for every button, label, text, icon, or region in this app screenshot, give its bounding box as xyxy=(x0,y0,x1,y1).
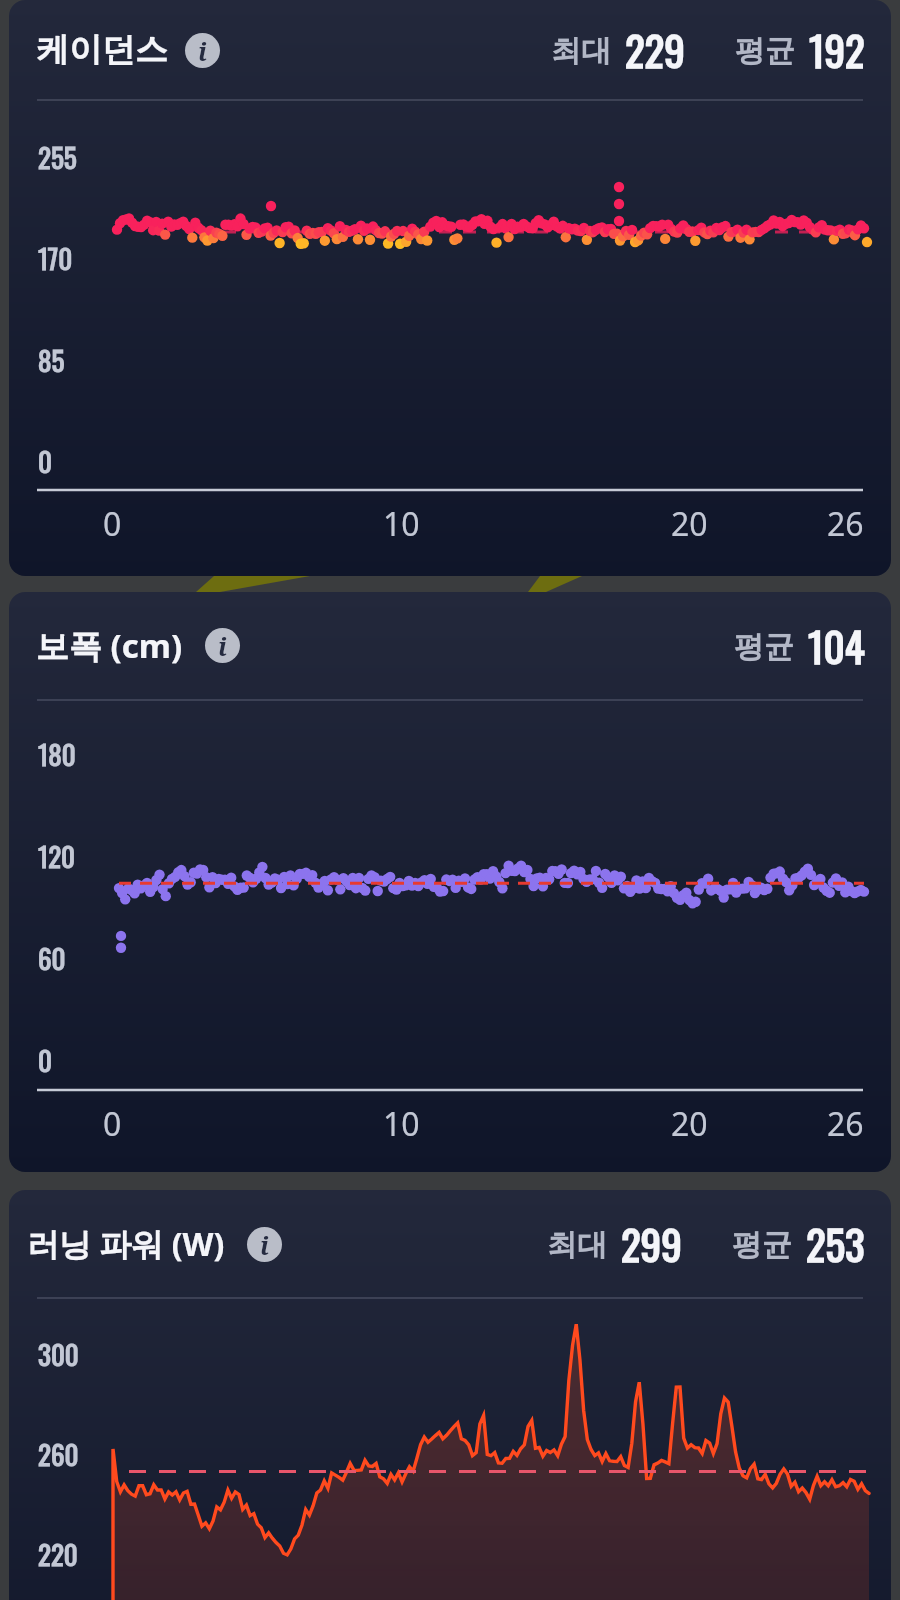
staticText: 104 xyxy=(808,615,865,676)
staticText: 26 xyxy=(827,502,864,546)
staticText: 평균 xyxy=(732,1226,792,1264)
button[interactable]: 정보 xyxy=(205,628,240,663)
staticText: 299 xyxy=(621,1213,682,1274)
staticText: 최대 xyxy=(551,32,611,70)
staticText: 85 xyxy=(38,340,65,380)
button[interactable]: 보폭 (cm) xyxy=(9,592,891,1172)
staticText: 0 xyxy=(103,1102,122,1146)
staticText: 러닝 파워 (W) xyxy=(27,1222,225,1266)
staticText: 180 xyxy=(38,734,76,774)
staticText: 170 xyxy=(38,238,73,278)
staticText: 보폭 (cm) xyxy=(36,623,183,668)
staticText: 255 xyxy=(38,137,77,177)
staticText: 20 xyxy=(671,1102,708,1146)
staticText: 최대 xyxy=(547,1226,607,1264)
staticText: 평균 xyxy=(735,32,795,70)
button[interactable]: 정보 xyxy=(247,1227,282,1262)
staticText: 평균 xyxy=(734,628,794,666)
staticText: 0 xyxy=(38,1040,52,1080)
staticText: 260 xyxy=(38,1434,79,1474)
staticText: 26 xyxy=(827,1102,864,1146)
staticText: 10 xyxy=(383,1102,420,1146)
staticText: i xyxy=(260,1228,269,1262)
staticText: 케이던스 xyxy=(36,29,168,71)
staticText: 229 xyxy=(625,19,685,80)
button[interactable]: 케이던스 xyxy=(9,0,891,576)
staticText: 20 xyxy=(671,502,708,546)
staticText: 10 xyxy=(383,502,420,546)
staticText: 120 xyxy=(38,836,76,876)
staticText: 0 xyxy=(38,441,52,481)
staticText: i xyxy=(218,629,227,663)
staticText: 253 xyxy=(806,1213,865,1274)
staticText: 0 xyxy=(103,502,122,546)
staticText: 220 xyxy=(38,1534,78,1574)
staticText: 60 xyxy=(38,938,66,978)
button[interactable]: 러닝 파워 (W) xyxy=(9,1190,891,1600)
staticText: 300 xyxy=(38,1334,79,1374)
button[interactable]: 정보 xyxy=(185,33,220,68)
staticText: i xyxy=(198,34,207,68)
staticText: 192 xyxy=(809,19,865,80)
